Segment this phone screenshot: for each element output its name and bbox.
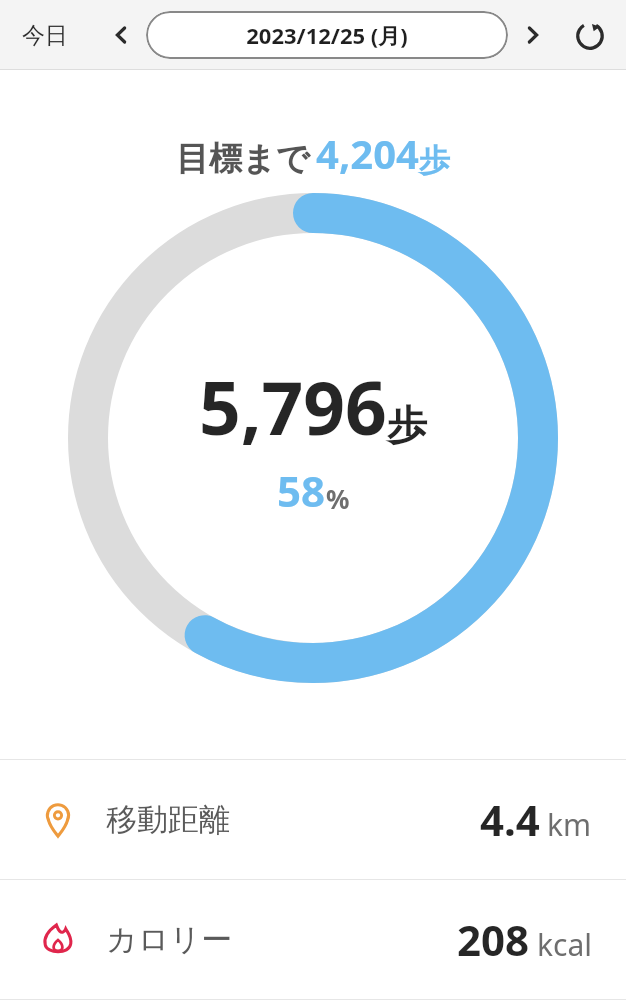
staticText: % xyxy=(326,481,350,516)
staticText: 4,204 xyxy=(316,126,419,180)
staticText: 208 xyxy=(457,911,530,968)
staticText: 移動距離 xyxy=(106,800,230,839)
button[interactable]: Calories xyxy=(0,880,626,999)
staticText: 5,796 xyxy=(199,357,387,456)
staticText: カロリー xyxy=(106,920,233,959)
button[interactable]: Refresh xyxy=(568,13,612,57)
button[interactable]: 2023/12/25 (月) xyxy=(146,11,508,59)
staticText: 歩 xyxy=(419,141,450,180)
staticText: kcal xyxy=(537,924,592,965)
staticText: km xyxy=(547,804,592,845)
staticText: 4.4 xyxy=(480,791,540,848)
staticText: 今日 xyxy=(22,21,68,50)
button[interactable]: Distance xyxy=(0,760,626,879)
staticText: 歩 xyxy=(387,400,427,450)
button[interactable]: 今日 xyxy=(14,15,76,56)
staticText: 目標まで xyxy=(176,138,310,180)
other: Calories xyxy=(38,920,78,960)
staticText: 58 xyxy=(277,462,326,519)
button[interactable]: Next day xyxy=(514,16,552,54)
button[interactable]: Previous day xyxy=(102,16,140,54)
staticText: 2023/12/25 (月) xyxy=(246,20,408,50)
other: Distance xyxy=(38,800,78,840)
